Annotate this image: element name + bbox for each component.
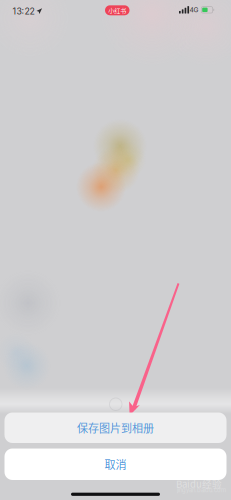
button[interactable]: 取消 (4, 448, 226, 480)
staticText: jingyan.baidu.com (177, 486, 226, 494)
staticText: 保存图片到相册 (77, 420, 154, 436)
staticText: 13:22 (12, 6, 34, 17)
staticText: Baidu经验 (176, 476, 222, 490)
staticText: 小红书 (108, 6, 126, 15)
staticText: 取消 (104, 456, 126, 472)
button[interactable]: 保存图片到相册 (4, 412, 226, 443)
staticText: 4G (189, 6, 198, 14)
